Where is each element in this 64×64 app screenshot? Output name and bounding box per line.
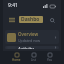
staticText: Overview	[18, 31, 39, 37]
staticText: Home	[12, 58, 21, 62]
button[interactable]: Menu	[6, 14, 18, 26]
button[interactable]: Dashboard	[19, 16, 43, 23]
staticText: Activity	[18, 46, 34, 49]
button[interactable]: You	[45, 52, 55, 63]
button[interactable]: Search	[47, 15, 57, 25]
button[interactable]: List	[29, 52, 38, 63]
staticText: Dashboard	[21, 16, 41, 23]
staticText: 9:41	[8, 2, 18, 9]
staticText: List	[31, 58, 36, 62]
staticText: You	[47, 58, 53, 62]
button[interactable]: Activity	[5, 46, 59, 49]
button[interactable]: Home	[10, 52, 23, 63]
button[interactable]: Overview	[5, 30, 59, 44]
staticText: Updated now	[18, 38, 41, 43]
